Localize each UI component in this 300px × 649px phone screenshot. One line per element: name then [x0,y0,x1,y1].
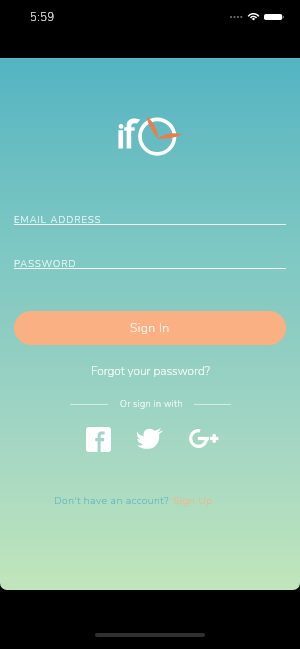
staticText: Don't have an account? [54,493,173,507]
staticText: Forgot your password? [91,363,210,379]
staticText: Or sign in with [120,398,183,410]
staticText: EMAIL ADDRESS [14,213,102,226]
button[interactable]: Forgot your password? [0,361,300,381]
staticText: Sign Up [173,493,213,507]
staticText: Sign In [130,320,170,336]
button[interactable]: Sign in with Google Plus [189,429,217,448]
staticText: PASSWORD [14,257,77,270]
button[interactable]: Sign in with Twitter [137,428,163,450]
button[interactable]: Sign In [14,311,286,345]
button[interactable]: Sign in with Facebook [86,427,111,452]
button[interactable]: Sign Up [173,493,213,507]
staticText: 5:59 [30,10,55,25]
